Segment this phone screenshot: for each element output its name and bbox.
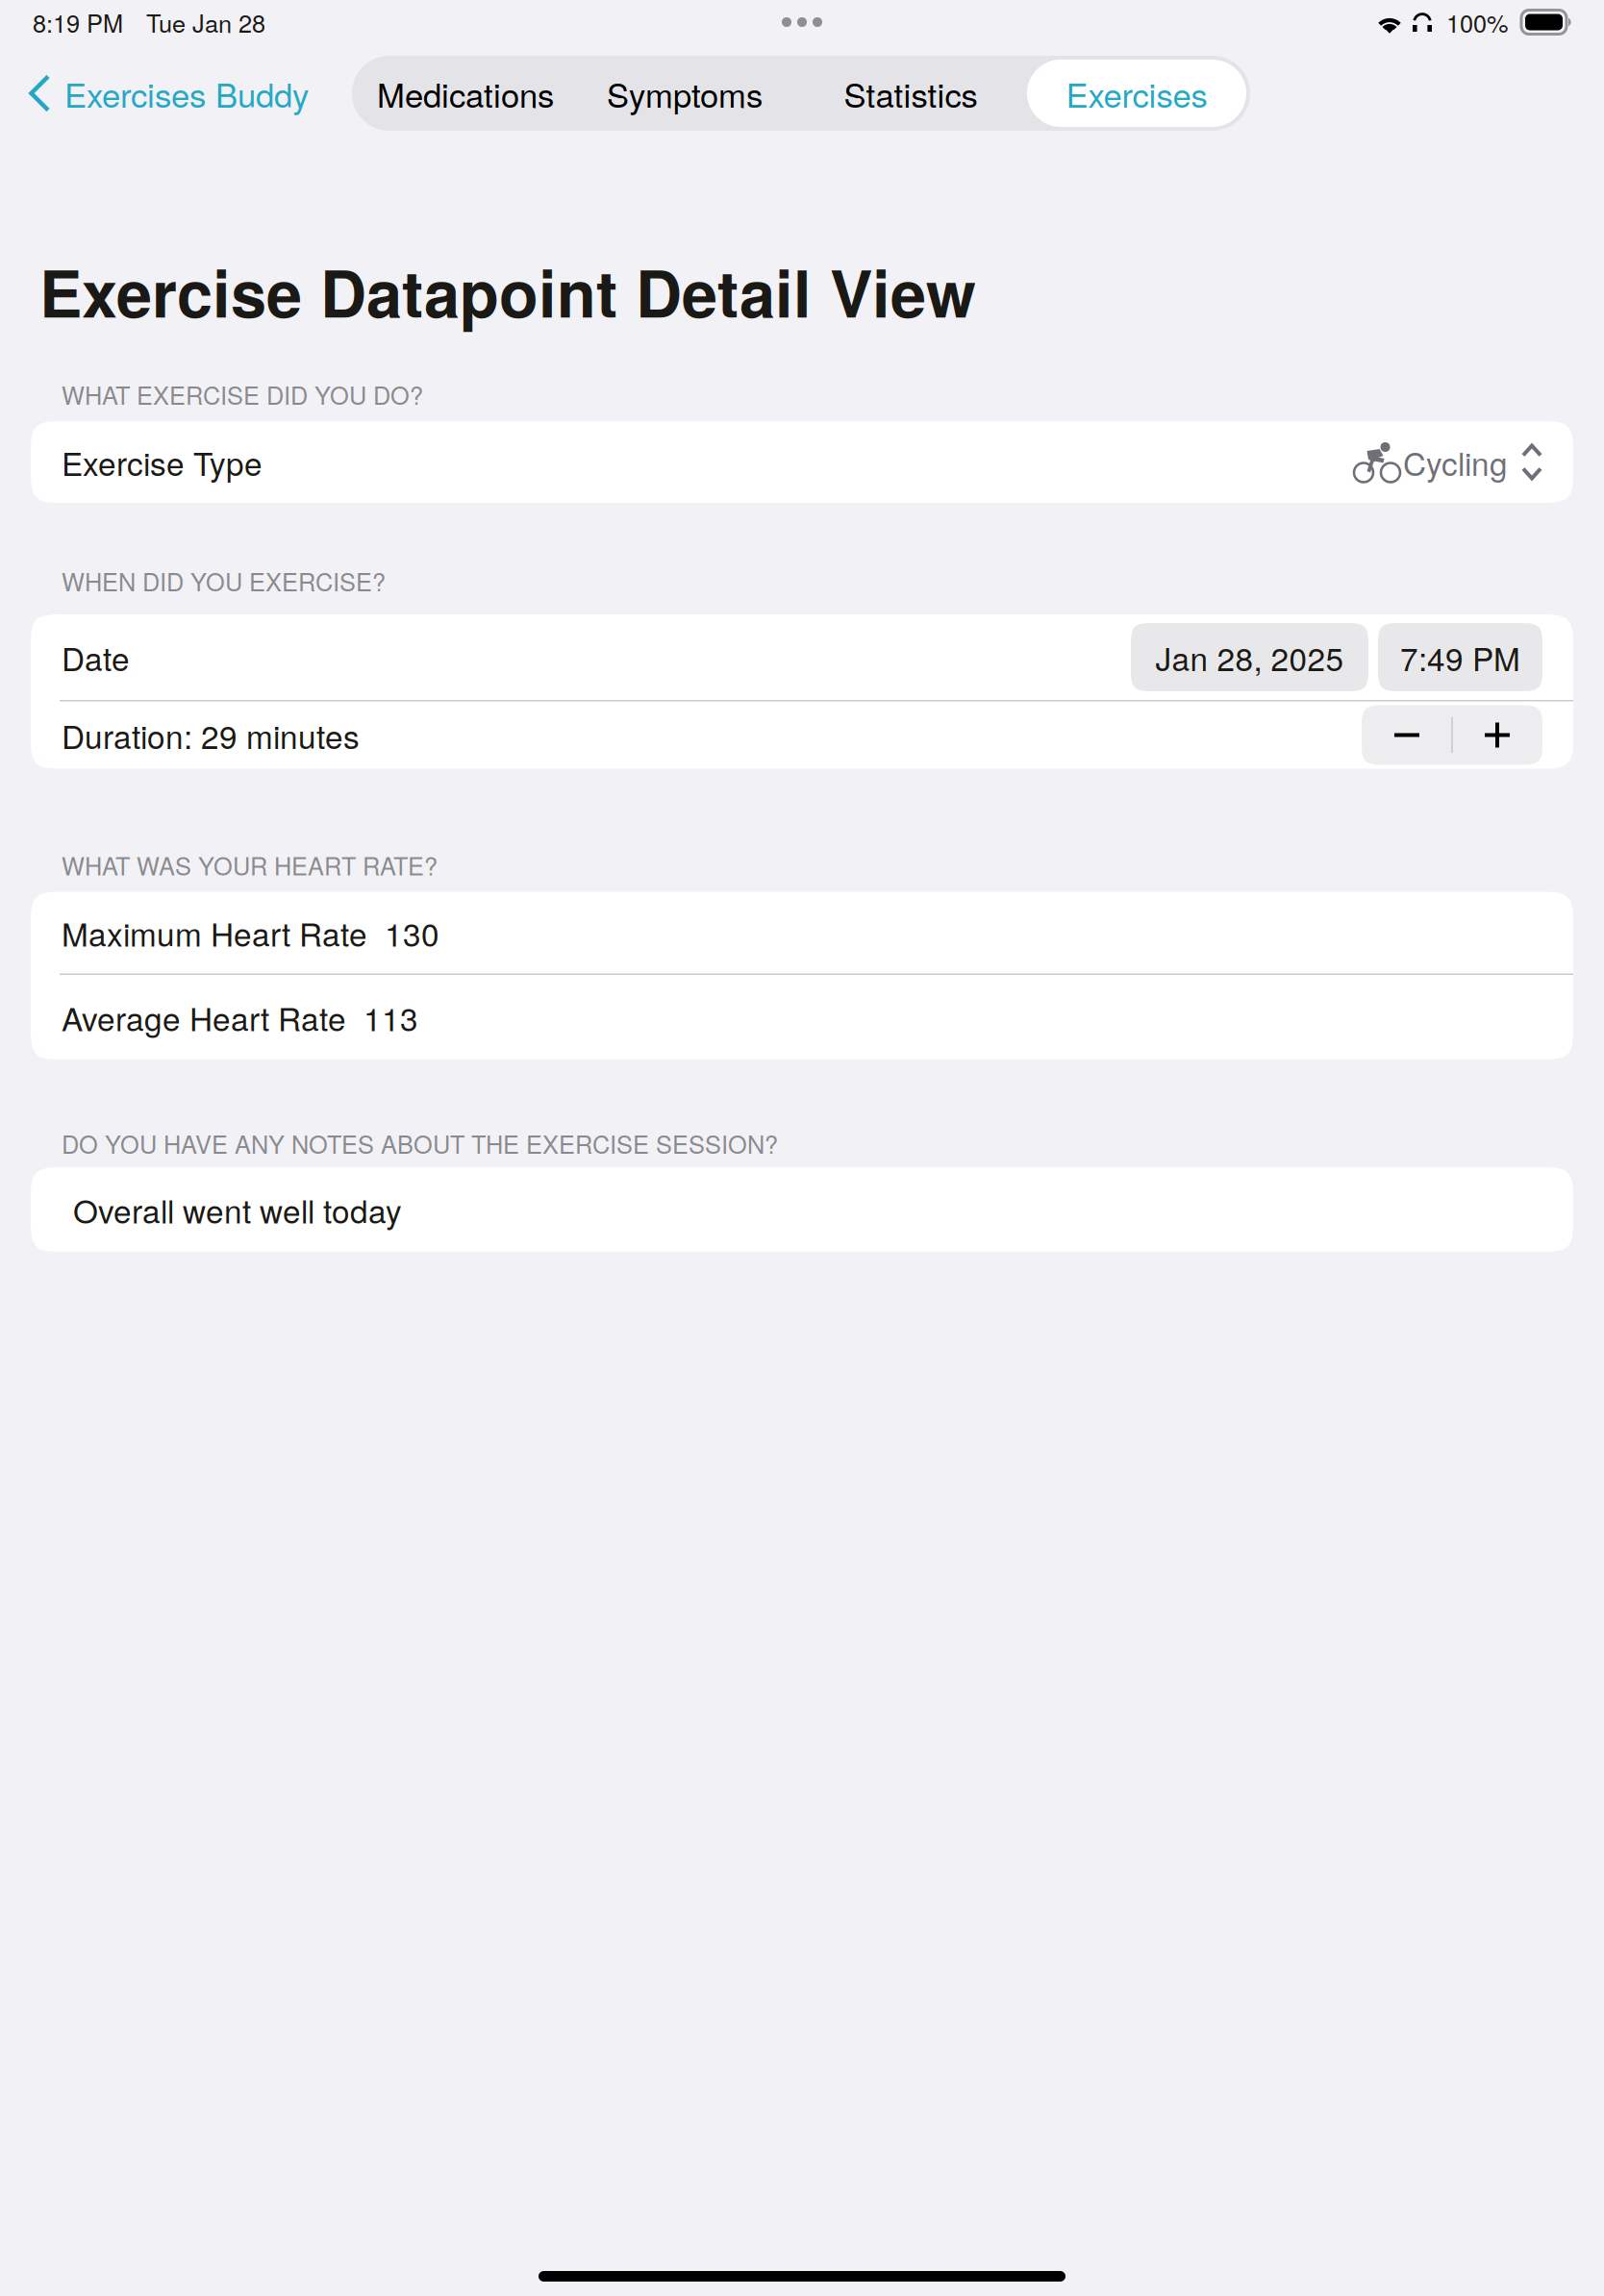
- staticText: 8:19 PM: [33, 5, 123, 40]
- staticText: DO YOU HAVE ANY NOTES ABOUT THE EXERCISE…: [62, 1126, 778, 1161]
- staticText: WHAT WAS YOUR HEART RATE?: [62, 847, 438, 882]
- staticText: WHAT EXERCISE DID YOU DO?: [62, 377, 423, 412]
- staticText: Exercises Buddy: [64, 69, 309, 117]
- button[interactable]: Exercises: [1027, 60, 1246, 127]
- staticText: Average Heart Rate 113: [62, 994, 418, 1040]
- staticText: Cycling: [1403, 439, 1508, 485]
- staticText: Statistics: [844, 69, 977, 117]
- button[interactable]: Symptoms: [575, 60, 794, 127]
- button[interactable]: Exercises Buddy: [0, 56, 309, 131]
- staticText: Date: [62, 634, 130, 680]
- staticText: Exercises: [1066, 69, 1207, 117]
- staticText: Exercise Type: [62, 439, 263, 485]
- staticText: Medications: [377, 69, 554, 117]
- staticText: Tue Jan 28: [146, 5, 265, 40]
- staticText: WHEN DID YOU EXERCISE?: [62, 563, 386, 598]
- button[interactable]: Decrease duration: [1362, 705, 1452, 765]
- staticText: Maximum Heart Rate 130: [62, 910, 439, 956]
- staticText: Symptoms: [607, 69, 763, 117]
- staticText: Duration: 29 minutes: [62, 712, 360, 758]
- staticText: Jan 28, 2025: [1155, 634, 1344, 680]
- staticText: Exercise Datapoint Detail View: [39, 245, 976, 337]
- button[interactable]: 7:49 PM: [1378, 623, 1542, 691]
- button[interactable]: Jan 28, 2025: [1131, 623, 1368, 691]
- staticText: 7:49 PM: [1400, 634, 1520, 680]
- button[interactable]: Statistics: [794, 60, 1027, 127]
- button[interactable]: Medications: [356, 60, 575, 127]
- button[interactable]: Increase duration: [1452, 705, 1542, 765]
- staticText: 100%: [1446, 5, 1509, 40]
- staticText: Overall went well today: [73, 1187, 402, 1232]
- button[interactable]: Exercise Type: [31, 421, 1573, 503]
